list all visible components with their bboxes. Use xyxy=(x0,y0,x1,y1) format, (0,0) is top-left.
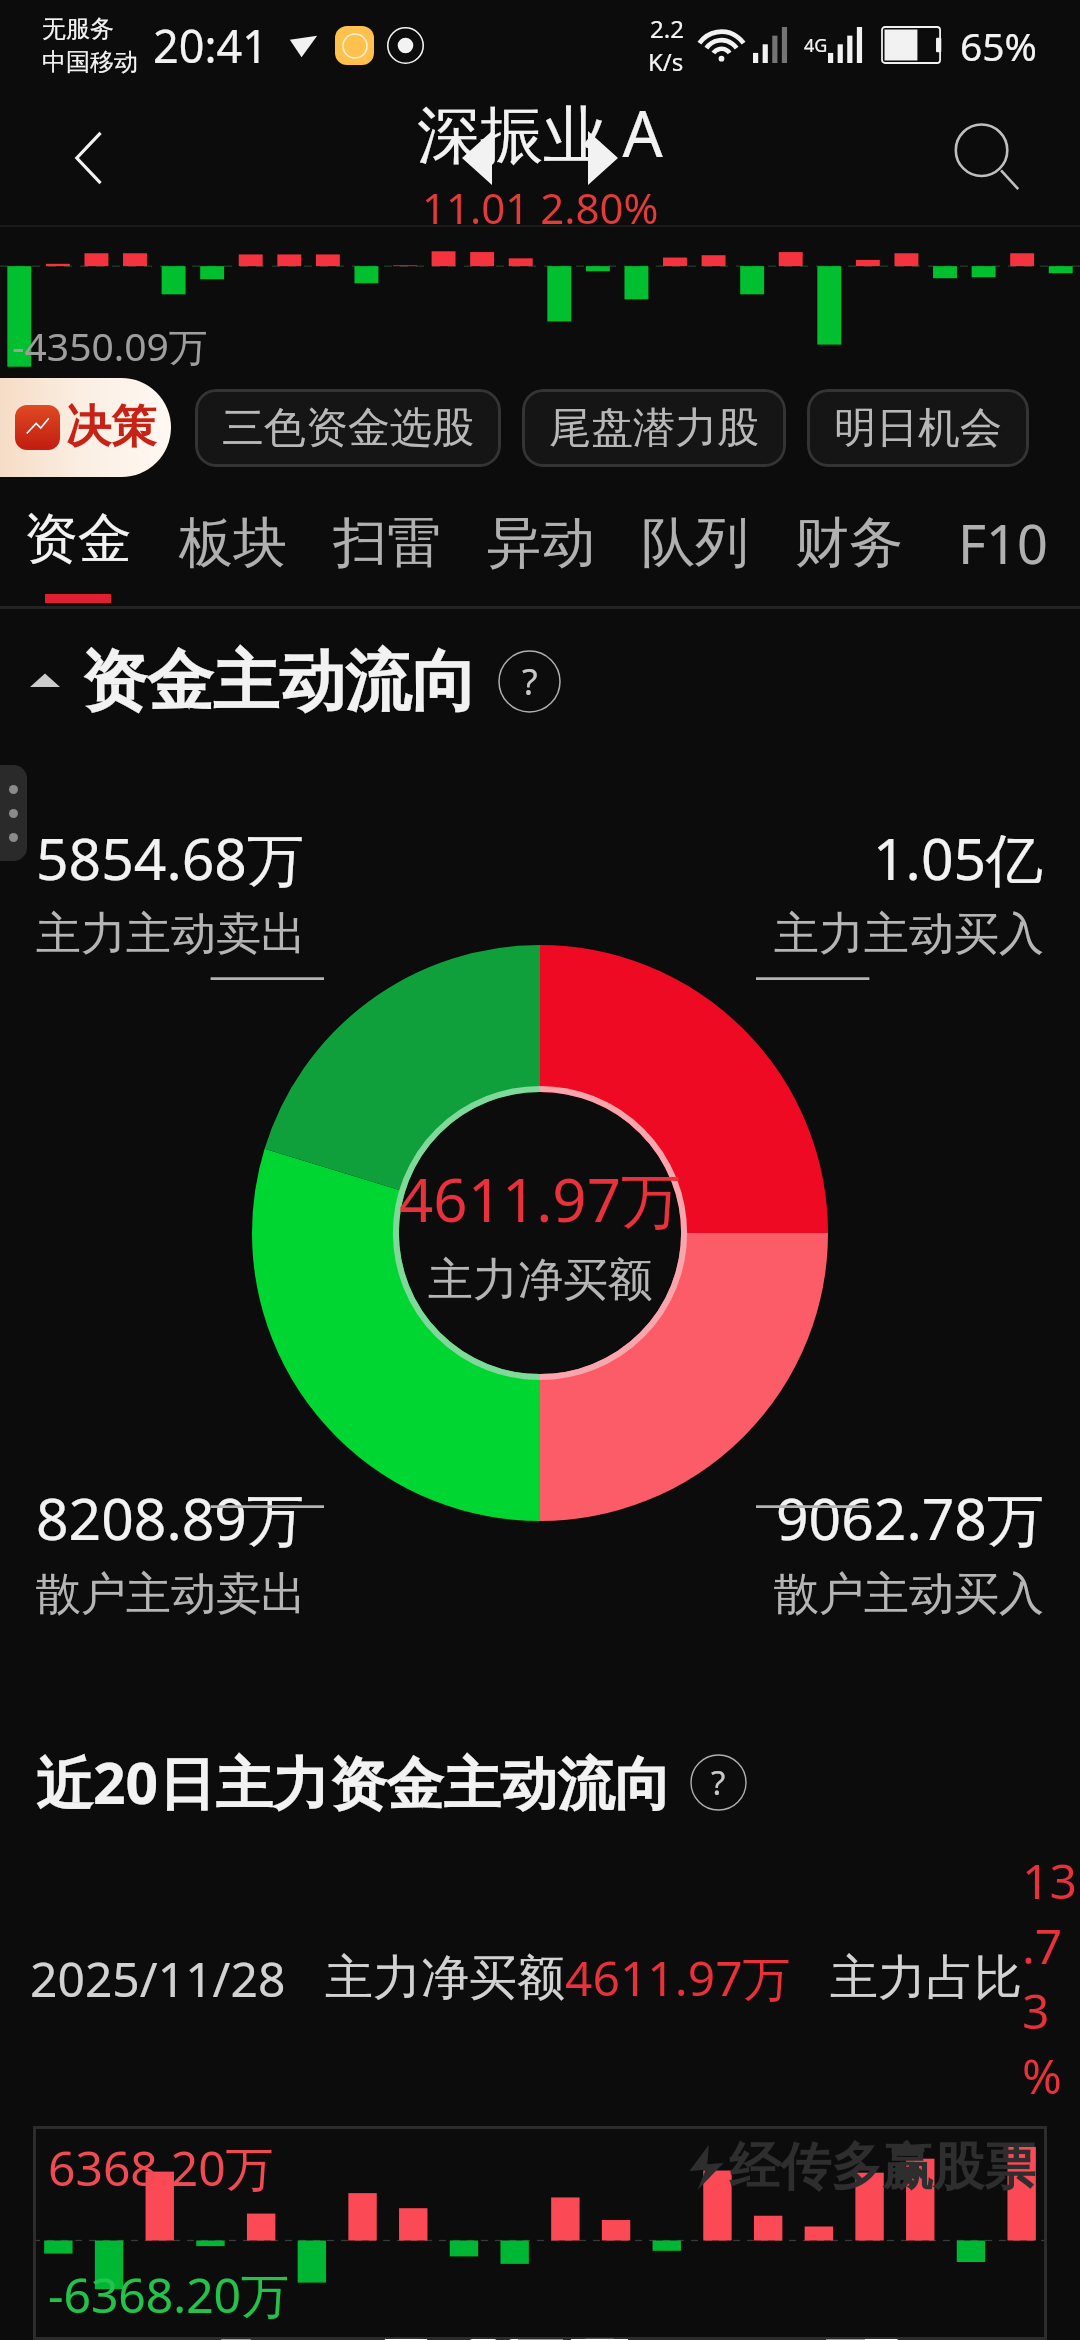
staticText: 尾盘潜力股 xyxy=(549,402,759,455)
staticText: ? xyxy=(711,1760,726,1805)
staticText: 散户主动卖出 xyxy=(36,1566,306,1623)
staticText: 11.01 2.80% xyxy=(422,179,659,225)
staticText: 扫雷 xyxy=(333,509,441,577)
staticText: 散户主动买入 xyxy=(774,1566,1044,1623)
staticText: -4350.09万 xyxy=(12,319,208,372)
button[interactable]: Help xyxy=(498,650,561,713)
staticText: 三色资金选股 xyxy=(222,402,474,455)
staticText: ? xyxy=(522,657,538,706)
button[interactable]: Previous stock xyxy=(405,90,549,225)
staticText: 决策 xyxy=(66,399,156,456)
button[interactable]: 尾盘潜力股 xyxy=(522,389,786,467)
staticText: 4611.97万 xyxy=(399,1158,681,1240)
staticText: 异动 xyxy=(487,509,595,577)
staticText: 经传多赢股票 xyxy=(729,2135,1035,2199)
staticText: 主力净买额 xyxy=(325,1948,565,2008)
staticText: 5854.68万 xyxy=(36,819,304,897)
button[interactable]: Help xyxy=(690,1754,747,1811)
staticText: 中国移动 xyxy=(42,47,138,77)
staticText: 深振业 A xyxy=(417,90,663,176)
staticText: 4G xyxy=(804,33,828,58)
staticText: 1.05亿 xyxy=(873,819,1044,897)
staticText: 近20日主力资金主动流向 xyxy=(36,1743,672,1821)
button[interactable]: 决策 xyxy=(0,378,171,477)
button[interactable]: F10 xyxy=(926,483,1080,609)
button[interactable]: Drawer handle xyxy=(0,765,27,861)
staticText: K/s xyxy=(648,45,684,78)
button[interactable]: 明日机会 xyxy=(807,389,1029,467)
button[interactable]: 板块 xyxy=(155,483,310,609)
staticText: 无服务 xyxy=(42,14,114,44)
button[interactable]: 异动 xyxy=(464,483,618,609)
button[interactable]: Next stock xyxy=(531,90,675,225)
staticText: -6368.20万 xyxy=(48,2262,290,2328)
staticText: 主力占比 xyxy=(830,1948,1022,2008)
staticText: 明日机会 xyxy=(834,402,1002,455)
staticText: 65% xyxy=(960,19,1038,72)
button[interactable]: Back xyxy=(0,90,180,225)
button[interactable]: 三色资金选股 xyxy=(195,389,501,467)
button[interactable]: Search xyxy=(894,90,1080,225)
staticText: 资金主动流向 xyxy=(81,640,477,723)
button[interactable]: 资金 xyxy=(0,483,155,609)
staticText: 20:41 xyxy=(153,15,269,76)
button[interactable]: 队列 xyxy=(618,483,772,609)
staticText: 主力主动卖出 xyxy=(36,906,306,963)
staticText: 2.2 xyxy=(650,12,684,45)
staticText: 主力净买额 xyxy=(428,1252,653,1309)
staticText: 队列 xyxy=(641,509,749,577)
staticText: 板块 xyxy=(179,509,287,577)
staticText: 资金 xyxy=(24,505,132,573)
staticText: F10 xyxy=(958,506,1048,580)
staticText: 9062.78万 xyxy=(776,1479,1044,1557)
staticText: 2025/11/28 xyxy=(30,1946,286,2011)
staticText: 主力主动买入 xyxy=(774,906,1044,963)
staticText: 6368.20万 xyxy=(48,2135,274,2201)
staticText: 财务 xyxy=(795,509,903,577)
staticText: 8208.89万 xyxy=(36,1479,304,1557)
button[interactable]: 财务 xyxy=(772,483,926,609)
staticText: 13.73% xyxy=(1022,1848,1080,2108)
button[interactable]: 扫雷 xyxy=(310,483,464,609)
staticText: 4611.97万 xyxy=(565,1945,791,2011)
